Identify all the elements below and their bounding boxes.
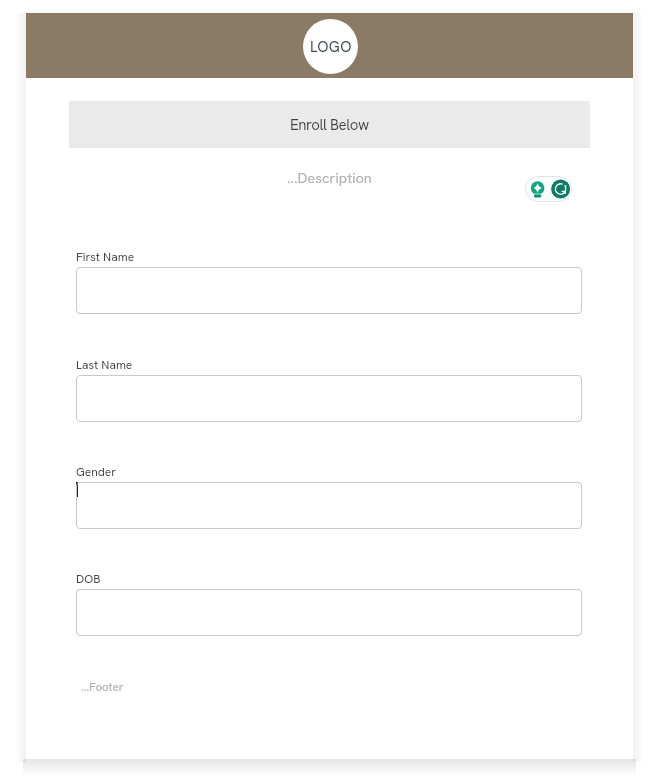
button[interactable]: First Name input field bbox=[76, 267, 582, 314]
button[interactable]: LOGO bbox=[303, 19, 358, 74]
staticText: DOB bbox=[76, 571, 101, 587]
staticText: Last Name bbox=[76, 357, 133, 373]
staticText: Gender bbox=[76, 464, 117, 480]
staticText: ...Description bbox=[287, 168, 372, 187]
button[interactable]: Grammarly writing assistant bbox=[525, 176, 572, 202]
staticText: Enroll Below bbox=[290, 115, 369, 135]
button[interactable]: Last Name input field bbox=[76, 375, 582, 422]
button[interactable]: Gender input field bbox=[76, 482, 582, 529]
button[interactable]: Enroll Below bbox=[69, 101, 590, 148]
button[interactable]: DOB input field bbox=[76, 589, 582, 636]
staticText: First Name bbox=[76, 249, 135, 265]
staticText: LOGO bbox=[310, 37, 352, 57]
staticText: ...Footer bbox=[81, 679, 124, 694]
